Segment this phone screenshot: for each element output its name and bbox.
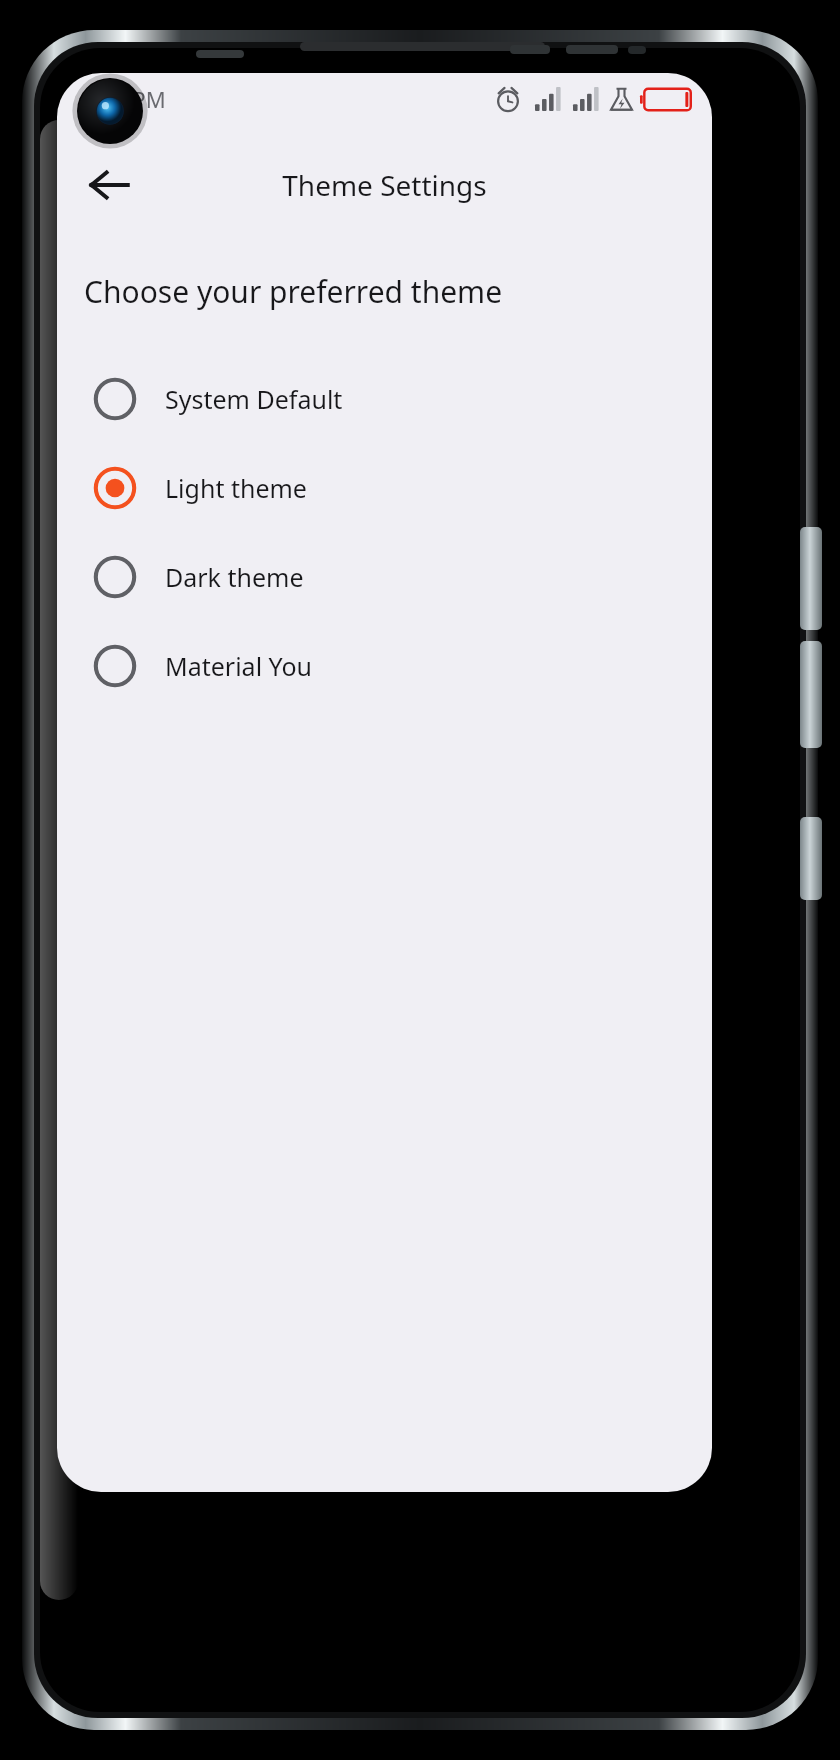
button[interactable]: Back (73, 149, 145, 221)
button[interactable]: Light theme (57, 443, 712, 532)
staticText: Choose your preferred theme (84, 271, 503, 312)
staticText: Light theme (165, 471, 307, 505)
staticText: System Default (165, 382, 343, 416)
button[interactable]: System Default (57, 354, 712, 443)
staticText: 9:41 PM (83, 84, 166, 114)
staticText: Theme Settings (282, 166, 487, 204)
staticText: Material You (165, 649, 313, 683)
button[interactable]: Material You (57, 621, 712, 710)
button[interactable]: Dark theme (57, 532, 712, 621)
staticText: Dark theme (165, 560, 304, 594)
